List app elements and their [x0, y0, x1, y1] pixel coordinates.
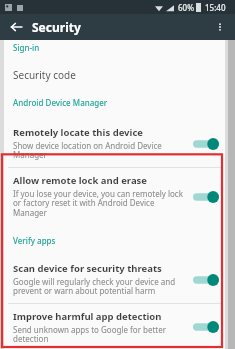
staticText: 15:40: [205, 2, 226, 13]
button[interactable]: Security code: [4, 67, 225, 83]
button[interactable]: Allow remote lock and erase: [4, 168, 225, 225]
button[interactable]: More options: [211, 18, 229, 36]
staticText: Improve harmful app detection: [13, 310, 162, 323]
button[interactable]: Back: [7, 18, 25, 36]
staticText: 60%: [178, 2, 194, 13]
button[interactable]: Scan device for security threats: [4, 256, 225, 303]
staticText: Allow remote lock and erase: [13, 174, 148, 187]
staticText: Show device location on Android Device M…: [13, 140, 187, 161]
button[interactable]: Improve harmful app detection: [4, 304, 225, 349]
button[interactable]: Remotely locate this device: [4, 120, 225, 167]
staticText: Security: [32, 19, 81, 35]
staticText: Sign-in: [13, 42, 225, 53]
staticText: Remotely locate this device: [13, 126, 143, 139]
staticText: Google will regularly check your device …: [13, 276, 187, 297]
staticText: Scan device for security threats: [13, 262, 162, 275]
staticText: Security code: [13, 68, 76, 82]
staticText: Android Device Manager: [13, 97, 225, 108]
staticText: Send unknown apps to Google for better d…: [13, 324, 187, 343]
staticText: Verify apps: [13, 235, 225, 246]
staticText: If you lose your device, you can remotel…: [13, 188, 187, 219]
